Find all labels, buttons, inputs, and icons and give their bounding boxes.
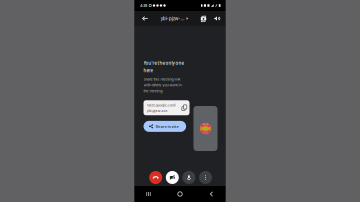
button[interactable]: Switch camera [198, 11, 209, 26]
button[interactable]: ybi-pjzw-… [161, 11, 189, 26]
button[interactable]: meet.google.com/ [143, 100, 189, 115]
staticText: ybi-pjzw-xxx [146, 108, 167, 113]
button[interactable]: Recent apps [139, 186, 157, 202]
button[interactable]: Mute microphone [182, 171, 195, 184]
staticText: meet.google.com/ [146, 103, 175, 107]
staticText: You're the only one here [143, 59, 183, 74]
button[interactable]: Share invite [143, 121, 186, 132]
button[interactable]: Home [171, 186, 189, 202]
staticText: 4:38 [140, 3, 147, 8]
button[interactable]: More options [199, 171, 212, 184]
staticText: the meeting [143, 88, 162, 93]
button[interactable]: Leave call [149, 171, 162, 184]
staticText: ybi-pjzw-… [161, 15, 185, 22]
button[interactable]: Turn off camera [166, 171, 179, 184]
button[interactable]: Back [202, 186, 220, 202]
button[interactable]: Audio output [211, 11, 222, 26]
button[interactable]: Back [138, 11, 151, 26]
staticText: Share this meeting link [143, 77, 180, 82]
staticText: Share invite [156, 124, 179, 129]
staticText: with others you want in [143, 82, 181, 87]
